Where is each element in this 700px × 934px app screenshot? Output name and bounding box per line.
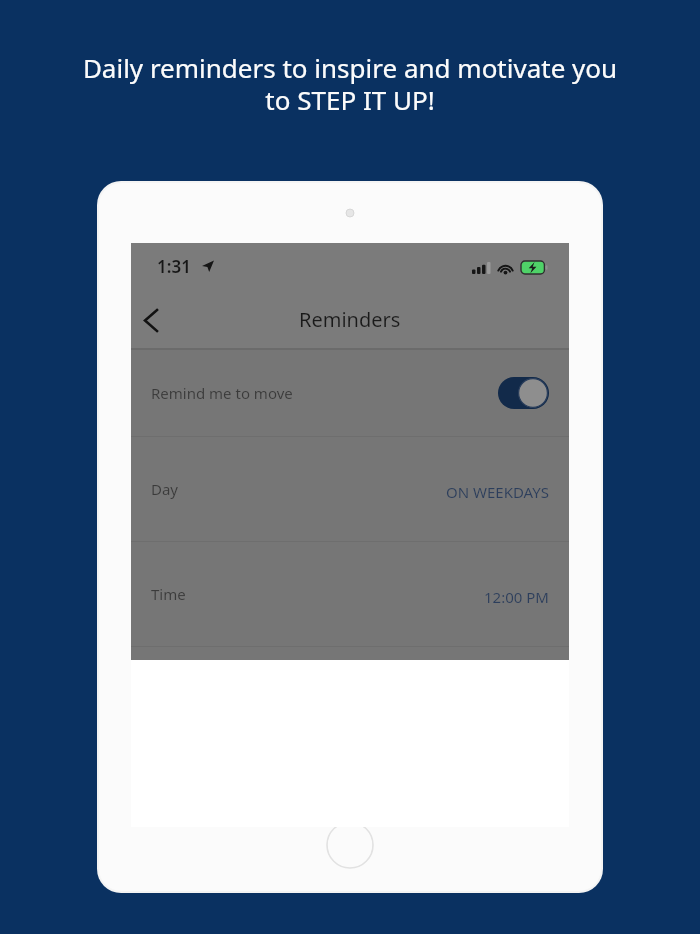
button[interactable]: Back [131, 298, 175, 342]
button[interactable]: Day [131, 437, 569, 541]
staticText: Remind me to move [151, 383, 293, 403]
staticText: 1:31 [157, 255, 191, 278]
staticText: Day [151, 479, 179, 499]
button[interactable]: Time [131, 542, 569, 646]
staticText: ON WEEKDAYS [446, 482, 549, 502]
button[interactable]: Remind me to move [131, 350, 569, 436]
staticText: Daily reminders to inspire and motivate … [40, 50, 660, 118]
staticText: 12:00 PM [484, 587, 549, 607]
staticText: Time [151, 584, 186, 604]
staticText: Reminders [299, 306, 401, 333]
